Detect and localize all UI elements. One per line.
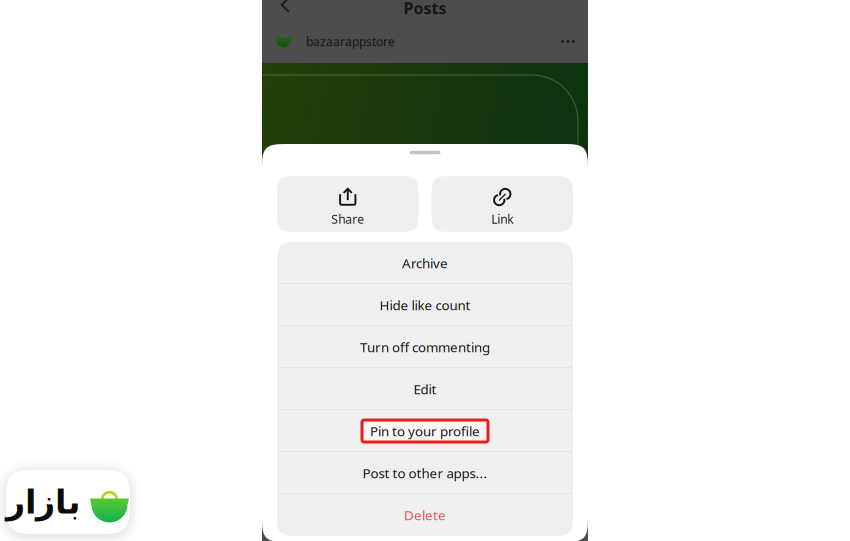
staticText: Turn off commenting [360, 338, 490, 356]
staticText: Hide like count [379, 296, 470, 314]
button[interactable]: Edit [277, 368, 573, 410]
button[interactable]: Post to other apps... [277, 452, 573, 494]
staticText: bazaarappstore [306, 33, 395, 49]
staticText: Delete [404, 506, 446, 524]
button[interactable]: Share [277, 176, 418, 232]
button[interactable]: More options [550, 25, 586, 58]
staticText: Post to other apps... [362, 464, 487, 482]
staticText: بازار [5, 483, 80, 521]
staticText: Pin to your profile [370, 422, 480, 440]
staticText: Edit [413, 380, 436, 398]
staticText: Link [491, 211, 513, 227]
button[interactable]: Back [270, 0, 300, 15]
button[interactable]: Turn off commenting [277, 326, 573, 368]
button[interactable]: Archive [277, 242, 573, 284]
staticText: Archive [402, 254, 448, 272]
staticText: Posts [403, 0, 446, 19]
button[interactable]: Pin to your profile [277, 410, 573, 452]
staticText: Share [331, 211, 364, 227]
button[interactable]: Link [431, 176, 573, 232]
button[interactable]: Delete [277, 494, 573, 536]
button[interactable]: Hide like count [277, 284, 573, 326]
